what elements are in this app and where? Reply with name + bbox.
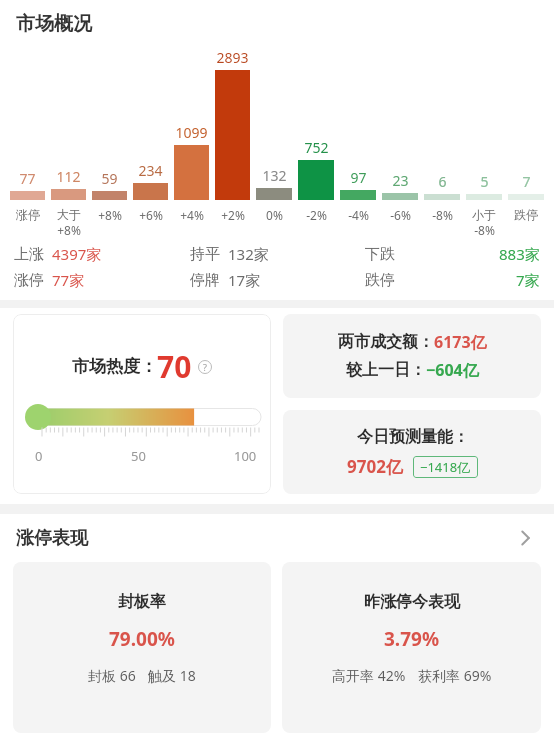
- staticText: 5: [480, 172, 489, 191]
- staticText: 跌停: [514, 207, 538, 222]
- staticText: 234: [138, 161, 163, 180]
- staticText: 触及 18: [148, 666, 196, 685]
- staticText: 7: [522, 172, 531, 191]
- staticText: 132家: [228, 244, 269, 264]
- staticText: 79.00%: [109, 626, 175, 652]
- staticText: -2%: [306, 207, 327, 223]
- staticText: -6%: [390, 207, 411, 223]
- staticText: 59: [101, 169, 118, 188]
- staticText: 23: [392, 171, 409, 190]
- staticText: +8%: [57, 222, 81, 238]
- staticText: 97: [350, 168, 367, 187]
- staticText: 0%: [266, 207, 283, 223]
- staticText: +2%: [221, 207, 245, 223]
- staticText: +6%: [139, 207, 163, 223]
- button[interactable]: Help: [198, 360, 212, 374]
- staticText: 封板 66: [88, 666, 136, 685]
- staticText: 1099: [175, 123, 208, 142]
- staticText: 下跌: [365, 245, 395, 264]
- staticText: 两市成交额：: [338, 332, 434, 352]
- staticText: 今日预测量能：: [357, 427, 469, 447]
- staticText: −604亿: [426, 359, 479, 381]
- staticText: 较上一日：: [346, 360, 426, 380]
- staticText: 涨停: [16, 207, 40, 222]
- staticText: 50: [131, 447, 146, 465]
- staticText: -4%: [348, 207, 369, 223]
- staticText: 涨停表现: [16, 527, 88, 550]
- staticText: −1418亿: [420, 458, 471, 476]
- button[interactable]: 今日预测量能：: [283, 410, 541, 494]
- staticText: 市场概况: [16, 12, 92, 36]
- staticText: 2893: [216, 48, 249, 67]
- staticText: 883家: [499, 244, 540, 264]
- staticText: 77: [19, 169, 36, 188]
- staticText: 获利率 69%: [418, 666, 492, 685]
- staticText: 752: [304, 138, 329, 157]
- button[interactable]: More: [514, 526, 538, 550]
- staticText: 132: [262, 166, 287, 185]
- staticText: 跌停: [365, 271, 395, 290]
- button[interactable]: 涨停表现: [0, 514, 554, 562]
- staticText: 77家: [52, 270, 85, 290]
- staticText: 封板率: [118, 592, 166, 612]
- staticText: 大于: [57, 207, 81, 222]
- staticText: 昨涨停今表现: [364, 592, 460, 612]
- button[interactable]: 两市成交额：: [283, 314, 541, 398]
- button[interactable]: 封板率: [13, 562, 271, 733]
- staticText: 3.79%: [384, 626, 440, 652]
- staticText: 0: [35, 447, 43, 465]
- staticText: 17家: [228, 270, 261, 290]
- staticText: 小于: [472, 207, 496, 222]
- staticText: -8%: [474, 222, 495, 238]
- staticText: 涨停: [14, 271, 44, 290]
- staticText: 6173亿: [434, 331, 487, 353]
- staticText: 停牌: [190, 271, 220, 290]
- staticText: 4397家: [52, 244, 102, 264]
- button[interactable]: 昨涨停今表现: [282, 562, 541, 733]
- staticText: 7家: [516, 270, 540, 290]
- staticText: 70: [157, 346, 192, 387]
- staticText: 100: [234, 447, 257, 465]
- staticText: 6: [438, 172, 447, 191]
- staticText: +8%: [98, 207, 122, 223]
- staticText: 持平: [190, 245, 220, 264]
- staticText: 高开率 42%: [332, 666, 406, 685]
- staticText: 市场热度：: [72, 356, 157, 377]
- staticText: 上涨: [14, 245, 44, 264]
- staticText: 112: [56, 167, 81, 186]
- staticText: 9702亿: [347, 455, 403, 478]
- staticText: -8%: [432, 207, 453, 223]
- staticText: ?: [203, 361, 207, 373]
- button[interactable]: 市场热度：: [13, 314, 271, 494]
- staticText: +4%: [180, 207, 204, 223]
